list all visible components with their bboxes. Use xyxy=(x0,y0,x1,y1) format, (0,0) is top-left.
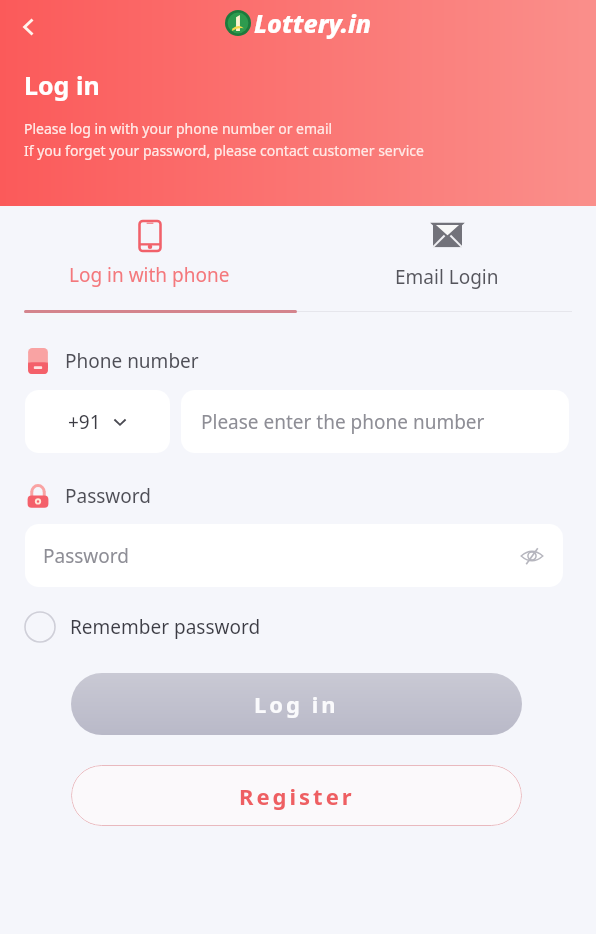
button[interactable]: Register xyxy=(71,765,522,826)
staticText: +91 xyxy=(68,409,101,435)
staticText: Register xyxy=(239,781,355,811)
staticText: If you forget your password, please cont… xyxy=(24,141,424,160)
staticText: Lottery.in xyxy=(254,6,372,40)
staticText: Password xyxy=(43,543,129,569)
button[interactable]: Remember password xyxy=(24,611,261,643)
button[interactable]: Show password xyxy=(515,539,549,573)
staticText: Please enter the phone number xyxy=(201,409,485,435)
staticText: Remember password xyxy=(70,614,261,640)
button[interactable]: Log in xyxy=(71,673,522,735)
staticText: Phone number xyxy=(65,348,199,374)
button[interactable]: Log in with phone xyxy=(0,206,298,302)
button[interactable]: Password xyxy=(25,524,563,587)
button[interactable]: Please enter the phone number xyxy=(181,390,569,453)
staticText: Log in with phone xyxy=(69,262,230,288)
staticText: Log in xyxy=(254,689,339,719)
button[interactable]: Email Login xyxy=(298,206,596,302)
staticText: Email Login xyxy=(395,264,499,290)
button[interactable]: Back xyxy=(8,6,50,48)
staticText: Password xyxy=(65,483,151,509)
staticText: Log in xyxy=(24,68,100,102)
button[interactable]: +91 xyxy=(25,390,170,453)
staticText: Please log in with your phone number or … xyxy=(24,119,333,138)
